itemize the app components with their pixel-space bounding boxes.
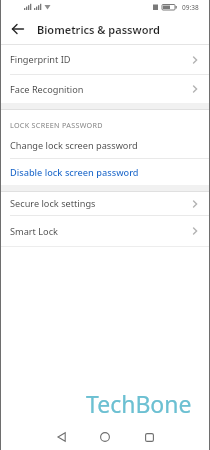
staticText: TechBone xyxy=(86,388,192,419)
button[interactable] xyxy=(132,424,166,450)
button[interactable]: Smart Lock xyxy=(0,216,210,246)
staticText: 09:38 xyxy=(182,3,199,12)
staticText: LOCK SCREEN PASSWORD xyxy=(10,120,103,130)
button[interactable]: Disable lock screen password xyxy=(0,159,210,185)
staticText: Biometrics & password xyxy=(37,22,160,37)
staticText: Face Recognition xyxy=(10,83,84,96)
button[interactable]: Fingerprint ID xyxy=(0,45,210,74)
staticText: Secure lock settings xyxy=(10,197,96,210)
staticText: Fingerprint ID xyxy=(10,53,71,66)
staticText: Smart Lock xyxy=(10,225,58,238)
button[interactable]: Change lock screen password xyxy=(0,132,210,158)
staticText: Disable lock screen password xyxy=(10,166,139,179)
staticText: Change lock screen password xyxy=(10,139,138,152)
button[interactable] xyxy=(44,424,78,450)
button[interactable]: Secure lock settings xyxy=(0,192,210,215)
button[interactable] xyxy=(88,424,122,450)
button[interactable]: Biometrics & password xyxy=(0,14,210,44)
button[interactable]: Face Recognition xyxy=(0,75,210,103)
